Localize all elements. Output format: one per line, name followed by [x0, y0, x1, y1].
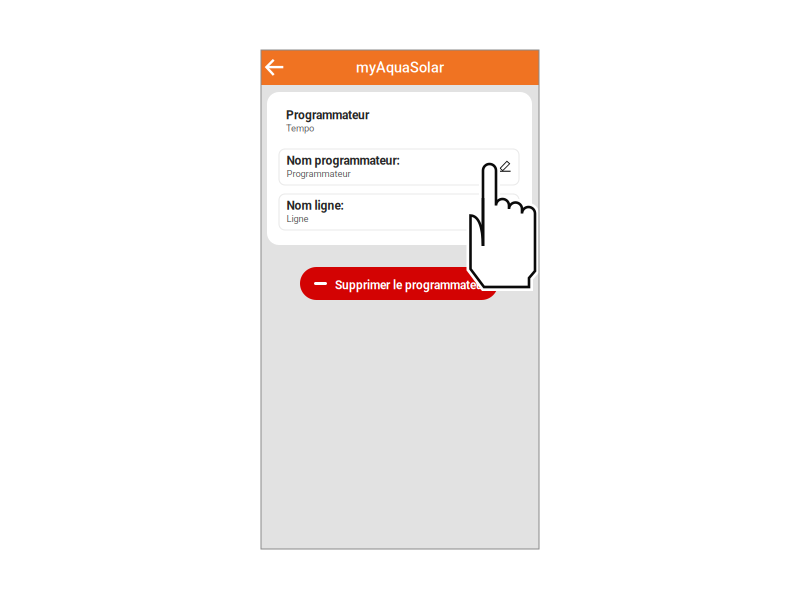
- staticText: Tempo: [286, 123, 314, 134]
- button[interactable]: Back: [261, 50, 291, 85]
- staticText: Ligne: [286, 213, 308, 224]
- staticText: Nom programmateur:: [286, 154, 399, 168]
- staticText: Supprimer le programmateur: [335, 278, 487, 292]
- staticText: Programmateur: [286, 168, 350, 179]
- staticText: Nom ligne:: [286, 199, 343, 213]
- staticText: Programmateur: [286, 108, 369, 122]
- staticText: myAquaSolar: [356, 59, 444, 76]
- button[interactable]: Nom ligne:: [279, 194, 519, 230]
- button[interactable]: Supprimer le programmateur: [300, 267, 498, 300]
- button[interactable]: Nom programmateur:: [279, 149, 519, 185]
